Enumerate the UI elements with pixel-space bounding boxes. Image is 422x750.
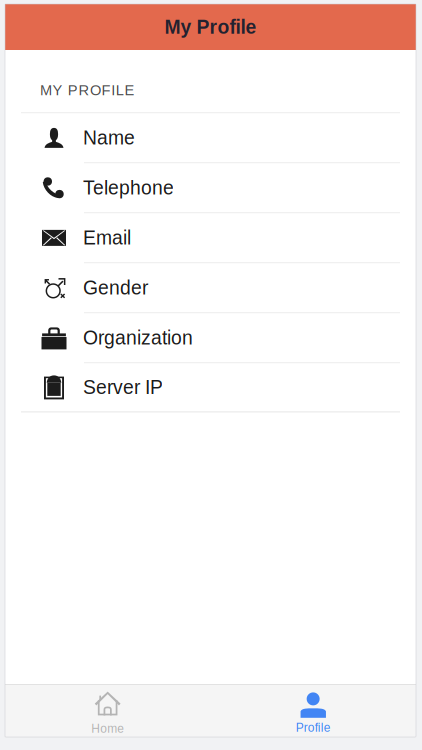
staticText: MY PROFILE	[40, 82, 134, 98]
button[interactable]: Name	[5, 113, 416, 163]
staticText: Gender	[83, 277, 148, 299]
staticText: Profile	[296, 721, 331, 734]
staticText: My Profile	[164, 16, 256, 38]
staticText: Telephone	[83, 177, 174, 199]
staticText: Home	[91, 722, 124, 735]
button[interactable]: Telephone	[5, 163, 416, 213]
staticText: Server IP	[83, 377, 163, 398]
button[interactable]: Server IP	[5, 363, 416, 411]
staticText: Name	[83, 127, 135, 149]
staticText: Email	[83, 227, 131, 249]
button[interactable]: Gender	[5, 263, 416, 313]
staticText: Organization	[83, 327, 193, 349]
button[interactable]: Home	[5, 685, 210, 737]
button[interactable]: Profile	[210, 685, 416, 737]
button[interactable]: Email	[5, 213, 416, 263]
button[interactable]: Organization	[5, 313, 416, 363]
